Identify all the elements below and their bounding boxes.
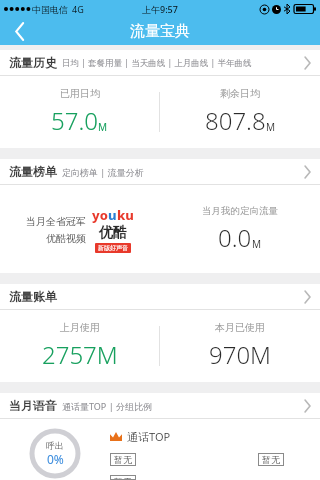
- staticText: 2757M: [42, 338, 118, 371]
- button[interactable]: 流量历史: [0, 50, 320, 75]
- staticText: 暂无: [114, 454, 132, 465]
- staticText: 970M: [209, 338, 272, 371]
- staticText: M: [266, 120, 276, 134]
- button[interactable]: 流量榜单: [0, 159, 320, 184]
- staticText: 流量账单: [9, 289, 57, 304]
- staticText: 本月已使用: [215, 321, 265, 334]
- staticText: yo: [92, 206, 108, 224]
- staticText: 4G: [72, 3, 84, 15]
- button[interactable]: 上月使用: [0, 321, 159, 371]
- staticText: 流量宝典: [130, 22, 190, 41]
- button[interactable]: 当月全省冠军: [0, 206, 160, 253]
- staticText: u: [108, 206, 117, 224]
- staticText: 0.0: [218, 221, 252, 254]
- staticText: M: [98, 120, 108, 134]
- button[interactable]: 呼出: [0, 419, 110, 480]
- staticText: 新版好声音: [98, 244, 128, 252]
- button[interactable]: 本月已使用: [160, 321, 320, 371]
- button[interactable]: 流量账单: [0, 284, 320, 309]
- staticText: 呼出: [46, 440, 64, 451]
- staticText: 优酷: [99, 224, 127, 242]
- button[interactable]: 暂无: [258, 453, 284, 466]
- button[interactable]: 暂无: [110, 453, 136, 466]
- staticText: 通话TOP: [127, 429, 171, 444]
- button[interactable]: 当月我的定向流量: [160, 205, 320, 254]
- staticText: 807.8: [205, 104, 266, 137]
- staticText: 流量榜单: [9, 164, 57, 179]
- staticText: 优酷视频: [46, 232, 86, 245]
- staticText: 上午9:57: [142, 3, 178, 15]
- button[interactable]: 已用日均: [0, 87, 159, 137]
- staticText: 上月使用: [60, 321, 100, 334]
- staticText: 0%: [47, 451, 64, 467]
- staticText: 定向榜单 | 流量分析: [62, 166, 144, 178]
- staticText: 当月语音: [9, 398, 57, 413]
- staticText: ku: [117, 206, 134, 224]
- staticText: 当月全省冠军: [26, 215, 86, 228]
- staticText: 已用日均: [60, 87, 100, 100]
- staticText: M: [252, 237, 262, 251]
- button[interactable]: 暂无: [110, 475, 136, 480]
- staticText: 暂无: [262, 454, 280, 465]
- button[interactable]: 当月语音: [0, 393, 320, 418]
- staticText: 当月我的定向流量: [202, 205, 278, 217]
- staticText: 57.0: [51, 104, 98, 137]
- staticText: 通话量TOP | 分组比例: [62, 400, 152, 412]
- staticText: 流量历史: [9, 55, 57, 70]
- staticText: 日均 | 套餐用量 | 当天曲线 | 上月曲线 | 半年曲线: [62, 57, 252, 69]
- button[interactable]: 剩余日均: [160, 87, 320, 137]
- staticText: 中国电信: [32, 4, 68, 15]
- staticText: 剩余日均: [220, 87, 260, 100]
- staticText: 暂无: [114, 476, 132, 479]
- button[interactable]: Back: [0, 18, 40, 45]
